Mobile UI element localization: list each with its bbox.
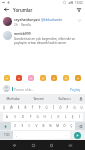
- button[interactable]: B: [40, 122, 47, 130]
- staticText: F: [27, 115, 34, 119]
- button[interactable]: Ç: [68, 122, 75, 130]
- staticText: 2: [8, 104, 15, 107]
- button[interactable]: Paylaş: [69, 87, 82, 91]
- button[interactable]: Back: [10, 141, 19, 150]
- staticText: 6: [36, 104, 43, 107]
- button[interactable]: Shift: [0, 122, 11, 130]
- button[interactable]: 4: [22, 104, 29, 112]
- button[interactable]: Heart: [50, 74, 58, 82]
- staticText: B: [40, 124, 47, 128]
- button[interactable]: Like: [76, 17, 82, 23]
- staticText: 9: [57, 104, 64, 107]
- button[interactable]: Laugh: [3, 74, 11, 82]
- button[interactable]: Clap: [39, 74, 47, 82]
- button[interactable]: Recent apps: [47, 141, 56, 150]
- button[interactable]: Yanıtla: [21, 23, 31, 27]
- staticText: O: [57, 106, 64, 110]
- staticText: C: [26, 124, 33, 128]
- staticText: İ: [76, 115, 83, 119]
- button[interactable]: 6: [36, 104, 43, 112]
- staticText: 8: [50, 104, 57, 107]
- button[interactable]: 8: [50, 104, 57, 112]
- staticText: P: [64, 106, 71, 110]
- staticText: 4: [22, 104, 29, 107]
- staticText: Paylaş: [70, 87, 81, 91]
- button[interactable]: Merhaba: [0, 94, 25, 103]
- button[interactable]: mmbb999: [0, 29, 85, 47]
- staticText: Merhaba: [6, 97, 20, 101]
- button[interactable]: 1: [0, 104, 8, 112]
- button[interactable]: Send: [70, 131, 85, 139]
- staticText: S: [11, 115, 19, 119]
- staticText: N: [47, 124, 54, 128]
- button[interactable]: 5: [29, 104, 36, 112]
- button[interactable]: Ğ: [71, 104, 78, 112]
- staticText: seyahatdunyasi: [14, 17, 40, 22]
- button[interactable]: J: [48, 113, 55, 121]
- button[interactable]: X: [19, 122, 26, 130]
- button[interactable]: Ş: [69, 113, 76, 121]
- staticText: W: [8, 106, 15, 110]
- button[interactable]: 7: [43, 104, 50, 112]
- button[interactable]: Back: [3, 6, 10, 13]
- staticText: ,: [16, 133, 17, 137]
- button[interactable]: S: [11, 113, 19, 121]
- staticText: R: [22, 106, 29, 110]
- button[interactable]: F: [27, 113, 34, 121]
- button[interactable]: Voice input: [77, 94, 85, 103]
- button[interactable]: 3: [15, 104, 22, 112]
- button[interactable]: 2: [8, 104, 15, 112]
- staticText: H: [41, 115, 48, 119]
- button[interactable]: Ö: [61, 122, 68, 130]
- button[interactable]: ?123: [0, 131, 13, 139]
- button[interactable]: seyahatdunyasi: [0, 15, 85, 29]
- button[interactable]: M: [54, 122, 61, 130]
- button[interactable]: Kullanıcı: [51, 94, 77, 103]
- button[interactable]: D: [19, 113, 27, 121]
- button[interactable]: C: [26, 122, 33, 130]
- button[interactable]: G: [34, 113, 41, 121]
- staticText: Ğ: [71, 106, 78, 110]
- staticText: 13:02: [75, 1, 83, 5]
- button[interactable]: Backspace: [75, 122, 85, 130]
- button[interactable]: Hide keyboard: [66, 141, 75, 150]
- button[interactable]: Home: [29, 141, 38, 150]
- button[interactable]: Tamam: [25, 94, 51, 103]
- button[interactable]: L: [62, 113, 69, 121]
- button[interactable]: K: [55, 113, 62, 121]
- button[interactable]: 9: [57, 104, 64, 112]
- button[interactable]: Comma: [13, 131, 20, 139]
- button[interactable]: Smile: [62, 74, 70, 82]
- button[interactable]: Z: [11, 122, 19, 130]
- button[interactable]: İ: [76, 113, 83, 121]
- staticText: Q: [0, 106, 8, 110]
- staticText: M: [54, 124, 61, 128]
- staticText: L: [62, 115, 69, 119]
- staticText: X: [19, 124, 26, 128]
- staticText: Ç: [68, 124, 75, 128]
- staticText: Y: [36, 106, 43, 110]
- button[interactable]: N: [47, 122, 54, 130]
- button[interactable]: Pray: [74, 74, 82, 82]
- button[interactable]: A: [3, 113, 11, 121]
- button[interactable]: Ü: [78, 104, 85, 112]
- staticText: V: [33, 124, 40, 128]
- button[interactable]: Filter: [75, 6, 82, 13]
- button[interactable]: 0: [64, 104, 71, 112]
- button[interactable]: H: [41, 113, 48, 121]
- staticText: Tamam: [33, 97, 44, 101]
- button[interactable]: Yorum ekle...: [12, 87, 69, 91]
- button[interactable]: Fire: [15, 74, 23, 82]
- staticText: Yanıtla: [21, 23, 31, 27]
- button[interactable]: V: [33, 122, 40, 130]
- button[interactable]: Blossom: [27, 74, 35, 82]
- staticText: Ş: [69, 115, 76, 119]
- staticText: Gonderinizi en çok begendim, ellerinde v…: [14, 37, 82, 45]
- staticText: @kbkurlando: [41, 17, 63, 22]
- staticText: 5: [29, 104, 36, 107]
- staticText: .: [66, 133, 67, 137]
- staticText: Z: [11, 124, 19, 128]
- staticText: D: [19, 115, 27, 119]
